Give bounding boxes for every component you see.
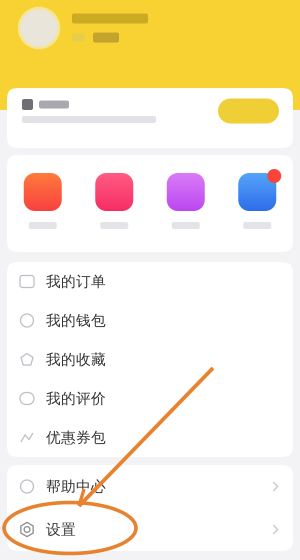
staticText: 设置 — [46, 520, 76, 538]
staticText: 优惠券包 — [46, 428, 106, 446]
button[interactable] — [7, 171, 78, 229]
button[interactable] — [221, 171, 293, 229]
button[interactable] — [78, 171, 150, 229]
button[interactable]: 我的评价 — [7, 379, 293, 418]
staticText: 帮助中心 — [46, 477, 106, 495]
button[interactable]: 设置 — [7, 508, 293, 551]
staticText: 我的钱包 — [46, 311, 106, 329]
button[interactable] — [0, 0, 300, 56]
button[interactable]: 我的订单 — [7, 262, 293, 301]
button[interactable]: 优惠券包 — [7, 418, 293, 457]
staticText: 我的订单 — [46, 272, 106, 290]
button[interactable]: 帮助中心 — [7, 465, 293, 508]
staticText: 我的评价 — [46, 389, 106, 407]
button[interactable] — [150, 171, 221, 229]
button[interactable]: 我的钱包 — [7, 301, 293, 340]
button[interactable]: 我的收藏 — [7, 340, 293, 379]
button[interactable] — [0, 88, 300, 148]
staticText: 我的收藏 — [46, 350, 106, 368]
